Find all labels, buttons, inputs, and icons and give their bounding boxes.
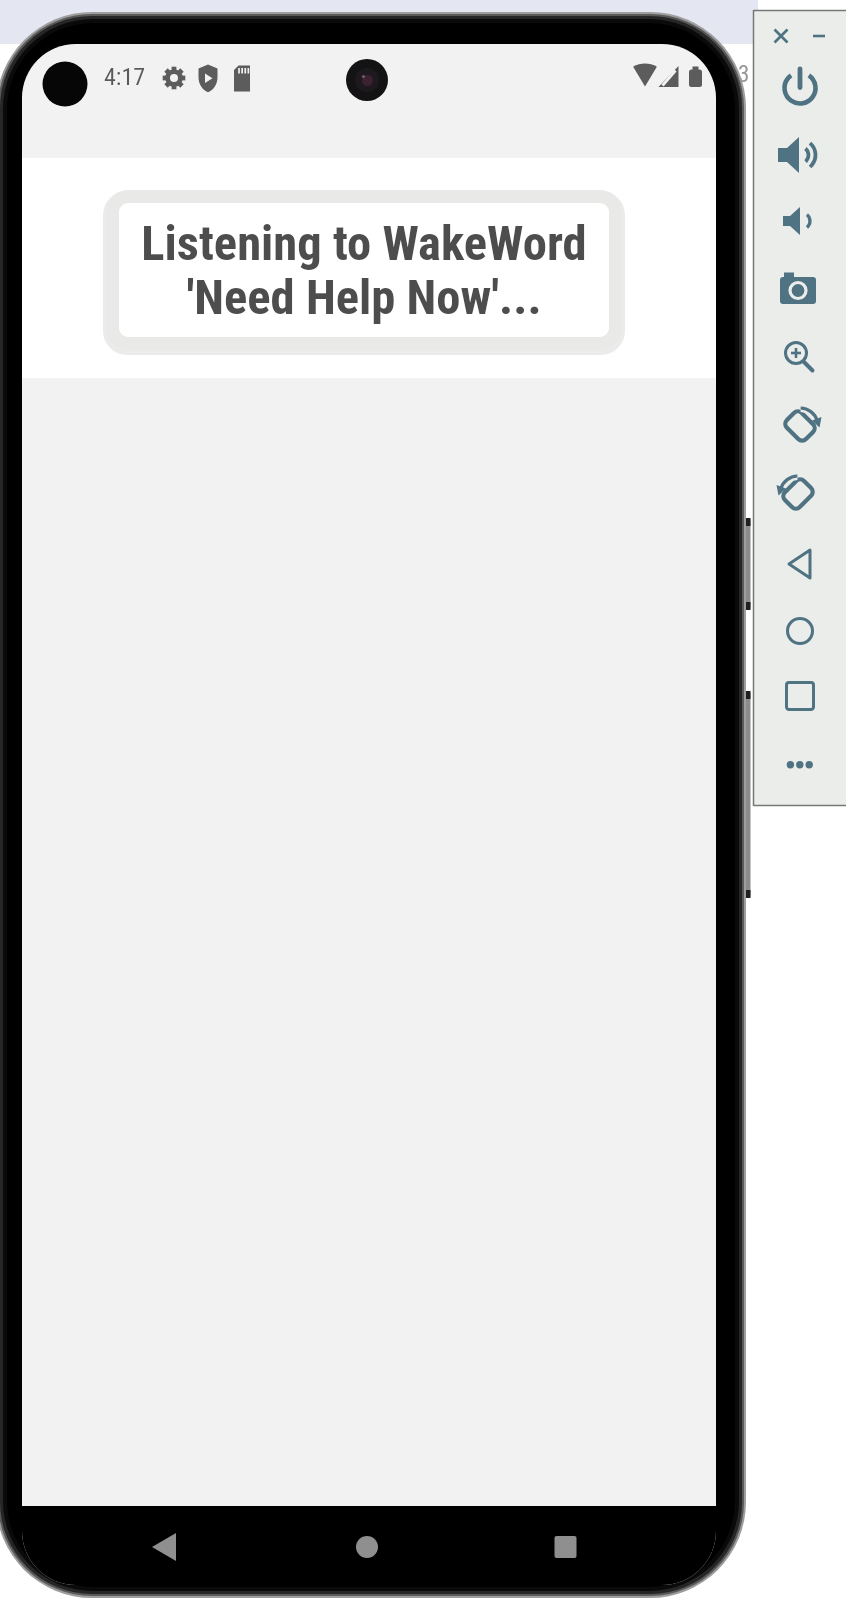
button[interactable] bbox=[134, 1517, 194, 1577]
staticText: Listening to WakeWord 'Need Help Now'... bbox=[141, 215, 587, 326]
button[interactable] bbox=[535, 1517, 595, 1577]
button[interactable] bbox=[778, 542, 822, 586]
button[interactable] bbox=[778, 743, 822, 787]
staticText: 4:17 bbox=[104, 63, 146, 91]
button[interactable] bbox=[778, 609, 822, 653]
button[interactable] bbox=[768, 22, 796, 50]
button[interactable] bbox=[805, 22, 833, 50]
button[interactable] bbox=[778, 336, 822, 380]
button[interactable] bbox=[778, 472, 822, 516]
button[interactable] bbox=[778, 133, 822, 177]
staticText: 30 bbox=[738, 61, 754, 87]
button[interactable] bbox=[337, 1517, 397, 1577]
button[interactable] bbox=[778, 268, 822, 312]
button[interactable] bbox=[778, 199, 822, 243]
button[interactable] bbox=[778, 66, 822, 110]
button[interactable] bbox=[778, 403, 822, 447]
button[interactable] bbox=[778, 674, 822, 718]
